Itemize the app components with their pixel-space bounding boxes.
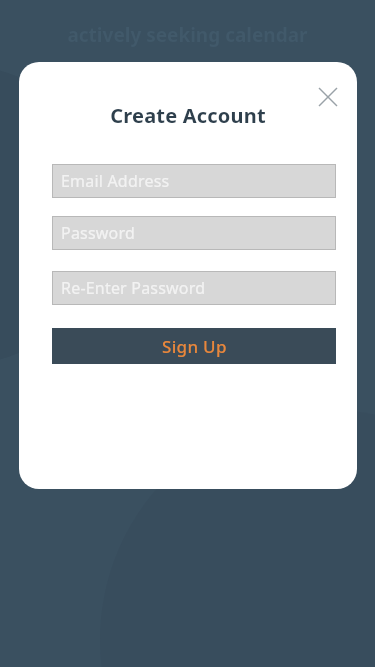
staticText: Create Account	[19, 102, 357, 129]
button[interactable]: Re-Enter Password	[53, 272, 335, 304]
staticText: Password	[61, 222, 135, 244]
staticText: actively seeking calendar	[0, 22, 375, 48]
staticText: Email Address	[61, 170, 170, 192]
button[interactable]: Close	[311, 80, 345, 114]
button[interactable]: Sign Up	[52, 328, 336, 364]
button[interactable]: Password	[53, 217, 335, 249]
staticText: Sign Up	[162, 335, 227, 358]
button[interactable]: Email Address	[53, 165, 335, 197]
staticText: Re-Enter Password	[61, 277, 206, 299]
